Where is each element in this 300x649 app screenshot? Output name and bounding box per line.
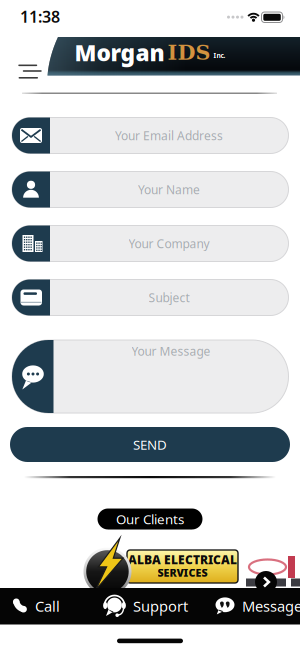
staticText: SEND — [133, 436, 167, 453]
staticText: ALBA ELECTRICAL — [128, 551, 237, 567]
staticText: Your Name — [138, 181, 200, 197]
staticText: Message — [242, 596, 300, 616]
staticText: Your Company — [128, 235, 209, 251]
staticText: Inc. — [213, 51, 225, 60]
staticText: Your Email Address — [115, 127, 223, 143]
staticText: Call — [35, 596, 60, 616]
button[interactable]: Our Clients — [97, 508, 202, 529]
staticText: Morgan — [74, 37, 164, 67]
button[interactable] — [255, 571, 277, 593]
button[interactable]: Support — [102, 591, 188, 621]
staticText: Support — [133, 596, 188, 616]
button[interactable]: Call — [12, 591, 60, 621]
staticText: Our Clients — [116, 510, 184, 528]
staticText: 11:38 — [20, 6, 60, 27]
button[interactable]: Your Email Address — [12, 117, 288, 153]
button[interactable]: Your Message — [12, 340, 288, 413]
staticText: Your Message — [131, 343, 210, 359]
staticText: Subject — [148, 289, 189, 305]
button[interactable] — [8, 48, 40, 72]
button[interactable]: Your Name — [12, 171, 288, 207]
button[interactable]: Message — [215, 591, 300, 621]
button[interactable]: Your Company — [12, 225, 288, 261]
staticText: IDS — [167, 40, 210, 65]
staticText: SERVICES — [157, 565, 207, 580]
button[interactable]: SEND — [10, 427, 290, 462]
button[interactable]: Subject — [12, 279, 288, 315]
